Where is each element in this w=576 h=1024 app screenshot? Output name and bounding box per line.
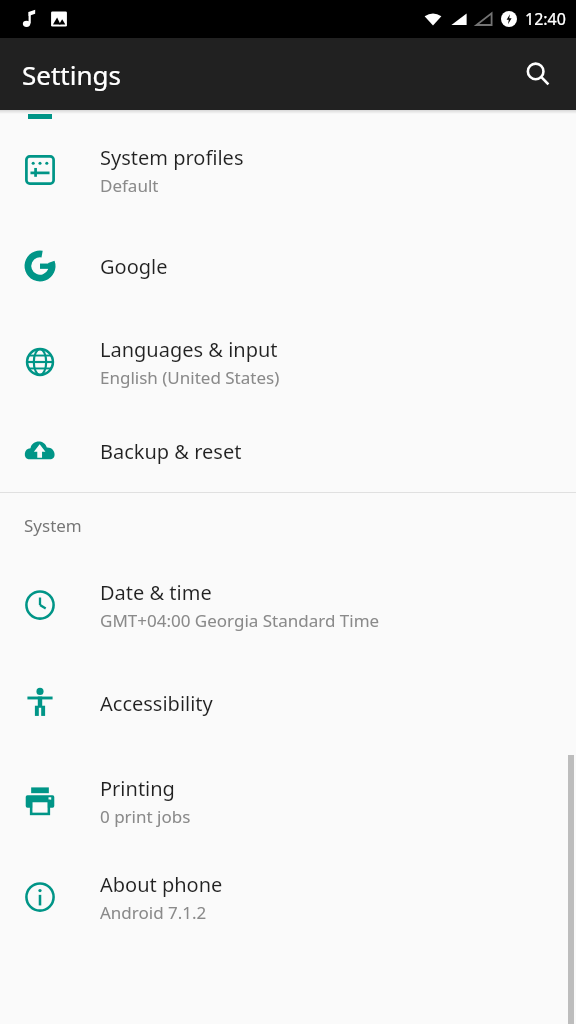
staticText: Date & time: [100, 579, 212, 606]
staticText: Android 7.1.2: [100, 901, 207, 924]
staticText: Backup & reset: [100, 438, 242, 465]
staticText: Languages & input: [100, 336, 278, 363]
staticText: GMT+04:00 Georgia Standard Time: [100, 609, 380, 632]
staticText: English (United States): [100, 366, 280, 389]
staticText: 0 print jobs: [100, 805, 191, 828]
staticText: Accessibility: [100, 690, 213, 717]
button[interactable]: System profiles: [0, 122, 576, 218]
button[interactable]: Accessibility: [0, 653, 576, 753]
button[interactable]: Search: [514, 50, 562, 98]
staticText: System profiles: [100, 144, 244, 171]
staticText: Default: [100, 174, 159, 197]
staticText: About phone: [100, 871, 223, 898]
staticText: 12:40: [525, 8, 566, 30]
staticText: Settings: [22, 57, 121, 92]
staticText: System: [24, 514, 82, 537]
button[interactable]: Google: [0, 218, 576, 314]
staticText: Google: [100, 253, 168, 280]
button[interactable]: Languages & input: [0, 314, 576, 410]
button[interactable]: Backup & reset: [0, 410, 576, 492]
button[interactable]: Date & time: [0, 557, 576, 653]
staticText: Printing: [100, 775, 175, 802]
button[interactable]: About phone: [0, 849, 576, 945]
button[interactable]: Printing: [0, 753, 576, 849]
